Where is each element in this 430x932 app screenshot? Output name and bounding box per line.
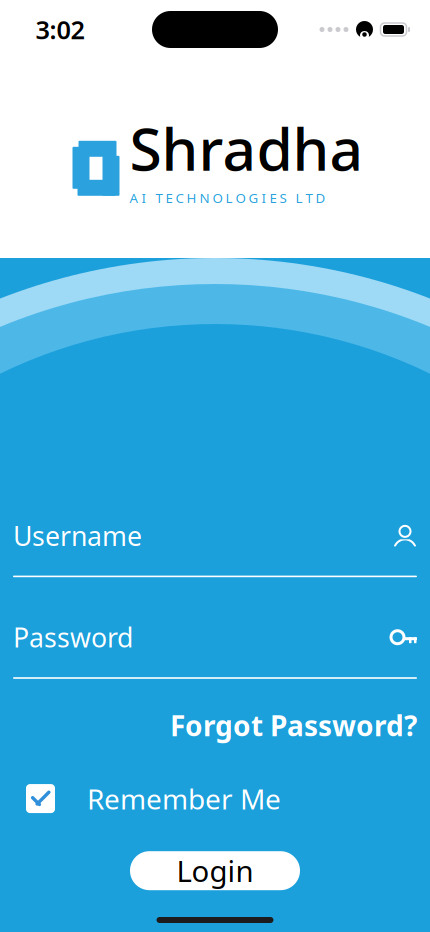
staticText: Forgot Password? <box>170 707 417 744</box>
staticText: A I T E C H N O L O G I E S L T D <box>129 189 325 207</box>
staticText: Password <box>13 619 133 655</box>
button[interactable]: Login <box>130 851 300 890</box>
staticText: Shradha <box>129 109 363 187</box>
button[interactable]: Remember Me <box>26 774 281 823</box>
staticText: Login <box>176 851 253 890</box>
staticText: Username <box>13 518 142 553</box>
button[interactable]: Forgot Password? <box>170 699 417 752</box>
staticText: Remember Me <box>87 780 281 817</box>
staticText: 3:02 <box>35 13 84 46</box>
